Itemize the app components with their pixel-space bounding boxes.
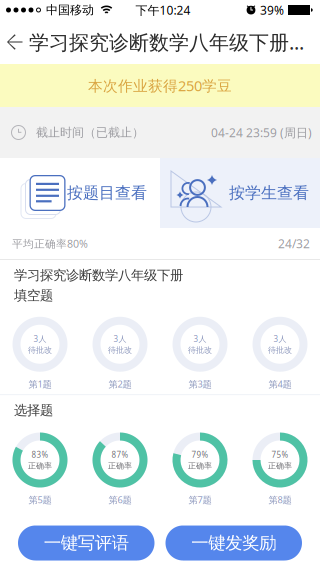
staticText: 下午10:24 bbox=[135, 2, 190, 18]
staticText: 学习探究诊断数学八年级下册... bbox=[29, 29, 304, 55]
staticText: 24/32 bbox=[278, 235, 310, 251]
staticText: 第5题 bbox=[28, 493, 51, 506]
staticText: 87% bbox=[111, 449, 128, 460]
staticText: 一键发奖励 bbox=[191, 532, 276, 554]
staticText: 学习探究诊断数学八年级下册 bbox=[14, 267, 183, 283]
staticText: 第2题 bbox=[108, 378, 131, 390]
staticText: 83% bbox=[31, 449, 48, 460]
staticText: 按题目查看 bbox=[67, 183, 147, 203]
staticText: 第1题 bbox=[28, 378, 51, 390]
staticText: 正确率 bbox=[108, 461, 132, 471]
button[interactable]: 一键写评语 bbox=[18, 525, 154, 560]
button[interactable]: 按题目查看 bbox=[0, 158, 160, 228]
staticText: 39% bbox=[260, 2, 284, 18]
staticText: 04-24 23:59 (周日) bbox=[211, 124, 312, 140]
staticText: 3人 bbox=[273, 333, 286, 344]
staticText: 3人 bbox=[33, 333, 46, 344]
staticText: 按学生查看 bbox=[229, 183, 309, 203]
staticText: 79% bbox=[191, 449, 208, 460]
staticText: 选择题 bbox=[14, 402, 53, 418]
staticText: 待批改 bbox=[188, 345, 212, 355]
staticText: 待批改 bbox=[268, 345, 292, 355]
staticText: 75% bbox=[271, 449, 288, 460]
staticText: 第8题 bbox=[268, 493, 291, 506]
button[interactable]: 一键发奖励 bbox=[165, 525, 302, 560]
staticText: 第3题 bbox=[188, 378, 211, 390]
staticText: 正确率 bbox=[268, 461, 292, 471]
staticText: 3人 bbox=[193, 333, 206, 344]
staticText: 中国移动 bbox=[46, 3, 94, 17]
staticText: 填空题 bbox=[14, 287, 53, 304]
staticText: 第7题 bbox=[188, 493, 211, 506]
staticText: 正确率 bbox=[188, 461, 212, 471]
staticText: 待批改 bbox=[28, 345, 52, 355]
staticText: 平均正确率80% bbox=[12, 236, 88, 251]
staticText: 第6题 bbox=[108, 493, 131, 506]
staticText: 3人 bbox=[113, 333, 126, 344]
staticText: 一键写评语 bbox=[44, 532, 129, 554]
staticText: 待批改 bbox=[108, 345, 132, 355]
button[interactable]: 按学生查看 bbox=[160, 158, 320, 228]
staticText: 第4题 bbox=[268, 378, 291, 390]
button[interactable]: 返回 bbox=[0, 20, 29, 64]
staticText: 正确率 bbox=[28, 461, 52, 471]
staticText: 本次作业获得250学豆 bbox=[88, 76, 232, 95]
staticText: 截止时间（已截止） bbox=[36, 125, 144, 140]
